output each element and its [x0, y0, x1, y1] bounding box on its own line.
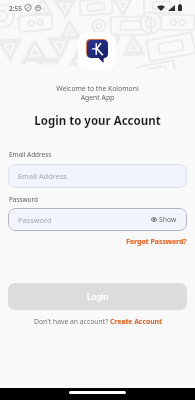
button[interactable]: Email Address	[8, 164, 187, 188]
staticText: Login	[87, 291, 109, 302]
staticText: Don't have an account?	[34, 317, 110, 326]
button[interactable]: Password	[8, 208, 187, 231]
staticText: Email Address	[18, 171, 67, 181]
button[interactable]: Login	[8, 283, 187, 310]
staticText: Login to your Account	[0, 113, 195, 129]
button[interactable]: Forgot Password?	[126, 237, 187, 246]
staticText: Welcome to the Kolomoni Agent App	[0, 84, 195, 102]
staticText: 2:55	[9, 4, 22, 13]
button[interactable]: Show password	[151, 215, 177, 224]
staticText: Show	[159, 215, 177, 224]
staticText: Password	[18, 215, 52, 225]
button[interactable]: Create Account	[110, 317, 162, 326]
staticText: Email Address	[9, 150, 52, 159]
staticText: Password	[9, 195, 38, 204]
